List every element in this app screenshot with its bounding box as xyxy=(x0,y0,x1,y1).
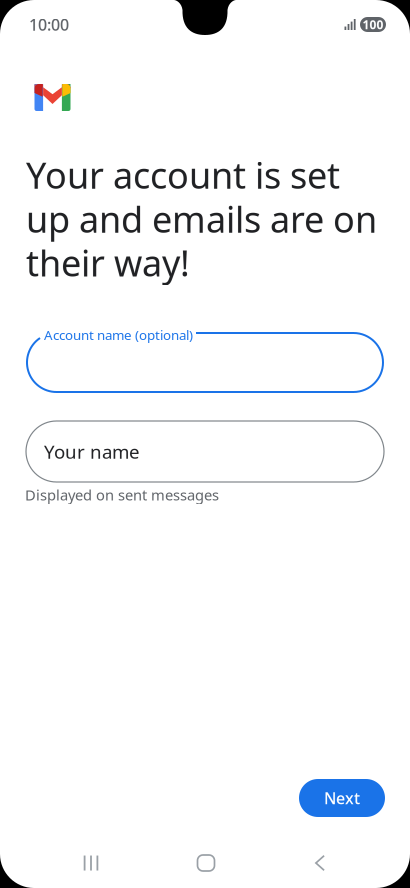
staticText: up and emails are on xyxy=(26,195,377,243)
button[interactable]: Recents xyxy=(55,841,127,885)
button[interactable]: Account name (optional) xyxy=(26,332,384,393)
staticText: 10:00 xyxy=(29,14,69,35)
staticText: Your name xyxy=(44,439,140,464)
button[interactable]: Home xyxy=(170,841,242,885)
staticText: 100 xyxy=(362,16,383,32)
staticText: Account name (optional) xyxy=(44,326,193,344)
staticText: Your account is set xyxy=(26,151,340,199)
button[interactable]: Back xyxy=(284,841,356,885)
staticText: Next xyxy=(324,787,360,809)
button[interactable]: Your name xyxy=(26,421,384,482)
button[interactable]: Next xyxy=(299,779,385,817)
staticText: their way! xyxy=(26,239,190,286)
staticText: Displayed on sent messages xyxy=(25,485,219,504)
